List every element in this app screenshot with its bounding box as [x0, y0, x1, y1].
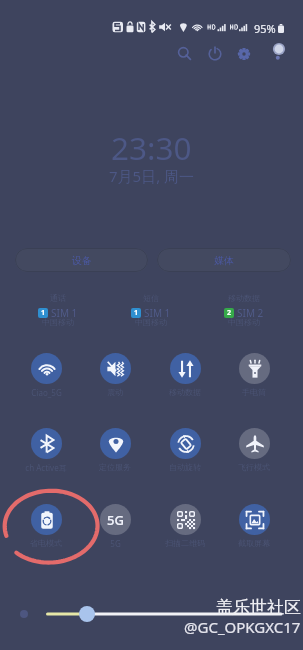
- staticText: 震动: [107, 387, 123, 397]
- staticText: 短信: [143, 293, 159, 303]
- button[interactable]: 通话: [18, 293, 98, 330]
- staticText: SIM 2: [237, 306, 264, 320]
- button[interactable]: 省电模式: [12, 504, 80, 548]
- button[interactable]: 移动数据: [151, 353, 219, 397]
- button[interactable]: 手电筒: [220, 353, 288, 397]
- staticText: 中国移动: [135, 317, 167, 327]
- staticText: 定位服务: [99, 462, 131, 472]
- staticText: 自动旋转: [169, 462, 201, 472]
- staticText: 飞行模式: [238, 462, 270, 472]
- staticText: 通话: [50, 293, 66, 303]
- staticText: 5G: [110, 538, 121, 549]
- button[interactable]: 媒体: [157, 248, 291, 272]
- staticText: 媒体: [214, 254, 234, 267]
- staticText: 1: [134, 308, 139, 318]
- staticText: 中国移动: [228, 317, 260, 327]
- button[interactable]: Search: [171, 40, 197, 66]
- button[interactable]: 截取屏幕: [220, 504, 288, 548]
- button[interactable]: Settings: [231, 41, 257, 67]
- staticText: 7月5日, 周一: [109, 166, 195, 186]
- staticText: 移动数据: [169, 387, 201, 397]
- button[interactable]: 移动数据: [204, 293, 284, 330]
- staticText: 截取屏幕: [238, 538, 270, 548]
- button[interactable]: 设备: [15, 248, 148, 272]
- staticText: 中国移动: [42, 317, 74, 327]
- staticText: ch Active耳: [25, 462, 67, 473]
- staticText: SIM 1: [144, 306, 171, 320]
- staticText: 5G: [107, 511, 124, 529]
- staticText: SIM 1: [51, 306, 78, 320]
- button[interactable]: 5G: [81, 504, 149, 549]
- staticText: 23:30: [111, 126, 192, 169]
- button[interactable]: 飞行模式: [220, 428, 288, 472]
- button[interactable]: ch Active耳: [12, 428, 80, 473]
- button[interactable]: Power: [202, 41, 228, 67]
- staticText: 1: [41, 308, 46, 318]
- staticText: 移动数据: [228, 293, 260, 303]
- button[interactable]: 自动旋转: [151, 428, 219, 472]
- staticText: 手电筒: [242, 387, 266, 397]
- button[interactable]: [0, 0, 303, 650]
- staticText: @GC_OPKGXC17: [184, 617, 301, 637]
- button[interactable]: 短信: [111, 293, 191, 330]
- button[interactable]: 震动: [81, 353, 149, 397]
- staticText: 设备: [72, 254, 92, 267]
- button[interactable]: Account: [266, 36, 292, 62]
- staticText: 95%: [254, 21, 276, 36]
- staticText: 扫描二维码: [165, 538, 205, 548]
- staticText: 2: [227, 308, 232, 318]
- button[interactable]: 定位服务: [81, 428, 149, 472]
- button[interactable]: Ciao_5G: [12, 353, 80, 398]
- staticText: 省电模式: [30, 538, 62, 548]
- staticText: Ciao_5G: [31, 387, 62, 398]
- staticText: 盖乐世社区: [216, 597, 301, 618]
- button[interactable]: 扫描二维码: [151, 504, 219, 548]
